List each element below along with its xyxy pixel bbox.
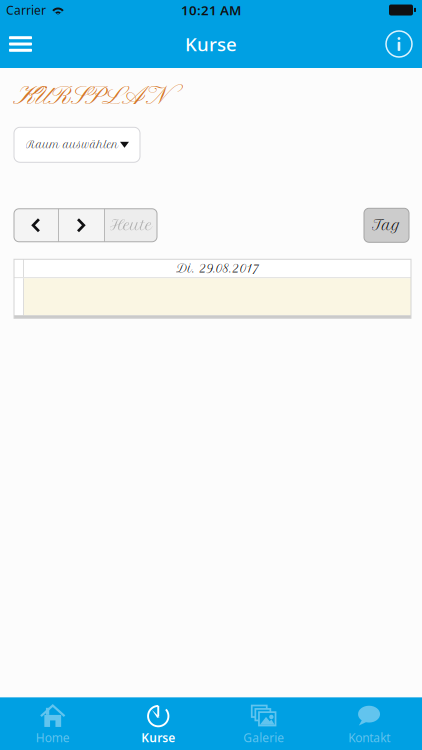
staticText: 10:21 AM — [181, 1, 241, 19]
staticText: Carrier — [6, 2, 46, 18]
button[interactable]: Kontakt — [316, 698, 422, 750]
button[interactable]: Raum auswählen — [14, 127, 140, 162]
button[interactable]: Next day — [59, 209, 104, 242]
staticText: Raum auswählen — [26, 139, 119, 151]
staticText: Di. 29.08.2017 — [176, 261, 259, 275]
staticText: KURSPLAN — [13, 81, 165, 114]
button[interactable]: Kurse — [105, 698, 211, 750]
button[interactable]: Menu — [0, 20, 41, 68]
staticText: Kontakt — [348, 729, 390, 745]
staticText: Home — [36, 729, 70, 745]
button[interactable]: Tag — [364, 208, 409, 242]
button[interactable]: Info — [376, 20, 422, 68]
button[interactable]: Previous day — [14, 209, 58, 242]
button[interactable]: Galerie — [211, 698, 316, 750]
button[interactable]: Heute — [105, 209, 157, 242]
staticText: Tag — [372, 217, 401, 234]
staticText: Kurse — [185, 32, 237, 56]
button[interactable]: Home — [0, 698, 105, 750]
staticText: Kurse — [141, 729, 175, 745]
staticText: Heute — [109, 217, 152, 234]
staticText: Galerie — [243, 729, 284, 745]
